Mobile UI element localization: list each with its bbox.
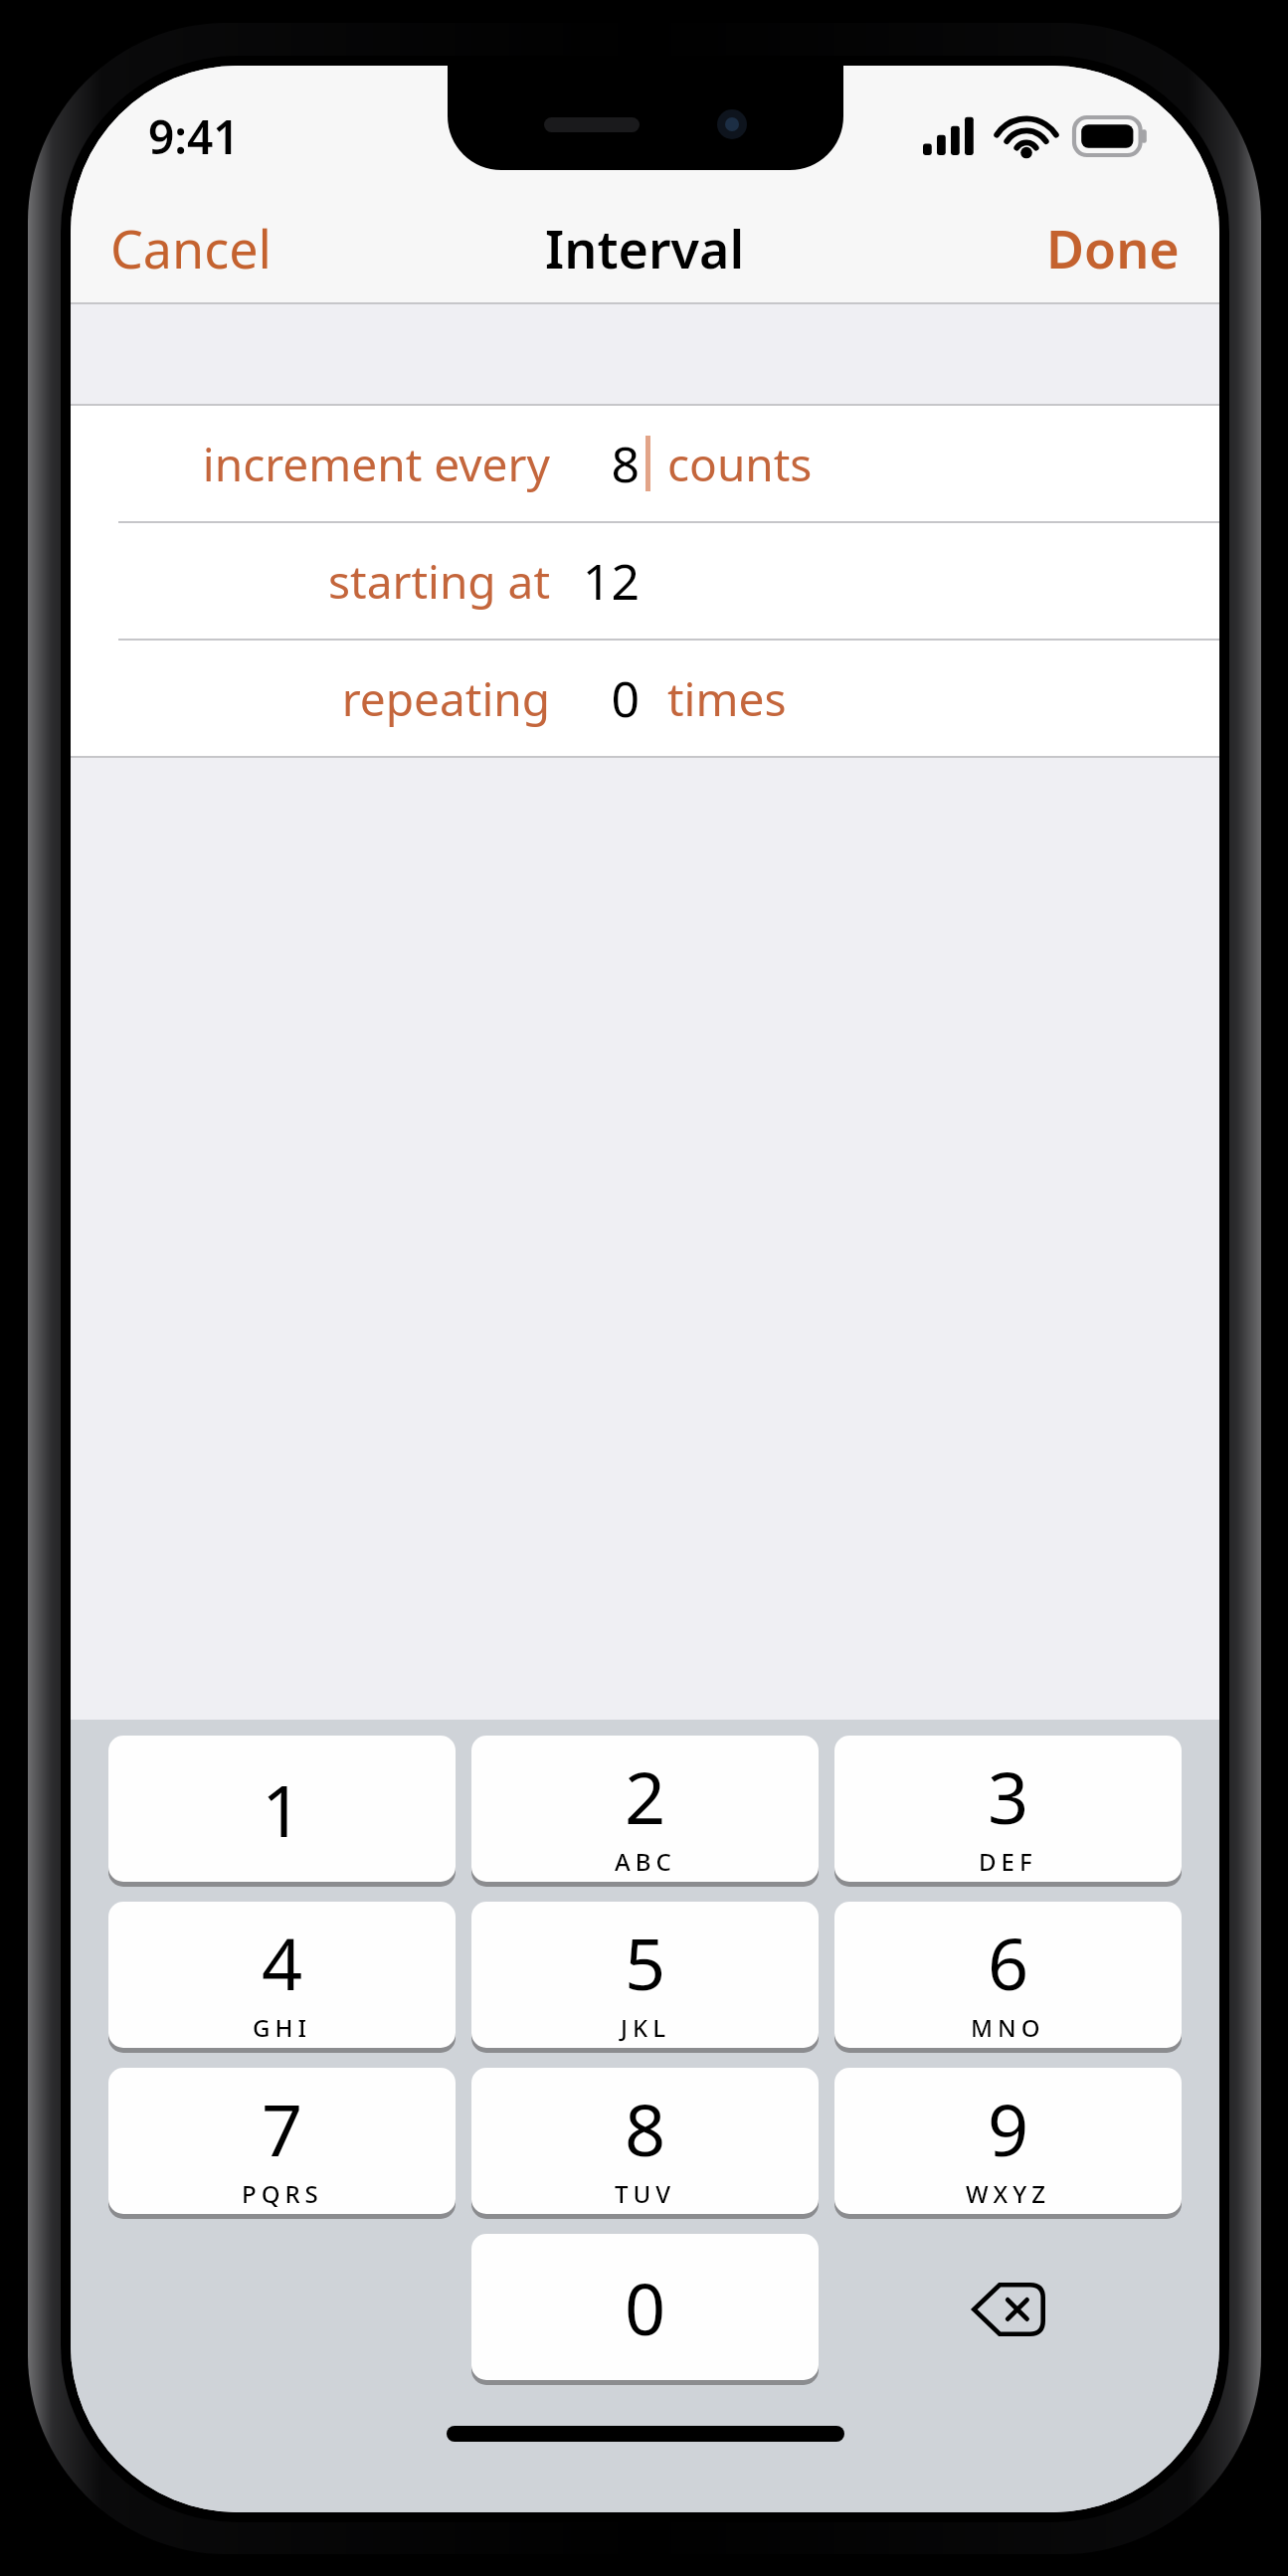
- staticText: 8: [625, 2080, 666, 2177]
- button[interactable]: 6: [834, 1902, 1182, 2053]
- button[interactable]: increment every: [71, 406, 1219, 521]
- staticText: 9:41: [148, 105, 240, 168]
- button[interactable]: Delete: [834, 2234, 1182, 2385]
- staticText: 6: [988, 1914, 1029, 2011]
- button[interactable]: 8: [471, 2068, 819, 2219]
- staticText: JKL: [621, 2011, 670, 2044]
- button[interactable]: 4: [108, 1902, 456, 2053]
- staticText: increment every: [202, 433, 550, 495]
- staticText: ABC: [615, 1845, 676, 1878]
- staticText: 3: [988, 1748, 1029, 1845]
- staticText: 0: [611, 664, 640, 732]
- staticText: 1: [262, 1760, 303, 1858]
- staticText: 8: [611, 430, 640, 497]
- button[interactable]: repeating: [71, 641, 1219, 756]
- button[interactable]: Cancel: [71, 199, 295, 297]
- staticText: 4: [262, 1914, 303, 2011]
- staticText: PQRS: [242, 2177, 323, 2210]
- staticText: starting at: [327, 550, 550, 613]
- button[interactable]: 7: [108, 2068, 456, 2219]
- staticText: 9: [988, 2080, 1029, 2177]
- staticText: repeating: [341, 667, 550, 730]
- staticText: 2: [625, 1748, 666, 1845]
- staticText: MNO: [971, 2011, 1045, 2044]
- staticText: Interval: [545, 213, 745, 283]
- staticText: 5: [625, 1914, 666, 2011]
- staticText: 12: [582, 547, 640, 615]
- staticText: counts: [667, 433, 813, 495]
- button[interactable]: 1: [108, 1736, 456, 1887]
- button[interactable]: 3: [834, 1736, 1182, 1887]
- staticText: Cancel: [110, 213, 272, 283]
- staticText: times: [667, 667, 787, 730]
- staticText: 7: [262, 2080, 303, 2177]
- staticText: DEF: [979, 1845, 1037, 1878]
- button[interactable]: starting at: [71, 523, 1219, 639]
- staticText: GHI: [253, 2011, 311, 2044]
- staticText: 0: [625, 2259, 666, 2356]
- staticText: WXYZ: [966, 2177, 1051, 2210]
- button[interactable]: 2: [471, 1736, 819, 1887]
- staticText: TUV: [615, 2177, 675, 2210]
- button[interactable]: 5: [471, 1902, 819, 2053]
- button[interactable]: Done: [1022, 199, 1219, 297]
- button[interactable]: 0: [471, 2234, 819, 2385]
- button[interactable]: 9: [834, 2068, 1182, 2219]
- staticText: Done: [1046, 213, 1180, 283]
